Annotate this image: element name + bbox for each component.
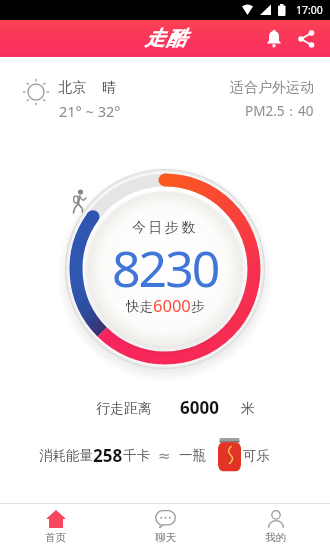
- staticText: 今日步数: [132, 219, 198, 237]
- staticText: 21° ~ 32°: [59, 101, 121, 121]
- staticText: 首页: [45, 531, 66, 544]
- staticText: 米: [241, 400, 255, 418]
- button[interactable]: 首页: [0, 504, 110, 550]
- staticText: 走酷: [144, 26, 187, 51]
- staticText: 聊天: [155, 531, 176, 544]
- staticText: 我的: [265, 531, 286, 544]
- button[interactable]: [262, 27, 286, 51]
- staticText: 行走距离: [96, 400, 152, 418]
- button[interactable]: 我的: [220, 504, 330, 550]
- staticText: 北京: [58, 79, 86, 97]
- staticText: 17:00: [296, 3, 323, 17]
- button[interactable]: [294, 27, 318, 51]
- staticText: 258: [93, 444, 123, 467]
- staticText: 千卡: [123, 447, 150, 464]
- button[interactable]: 聊天: [110, 504, 220, 550]
- staticText: 步: [191, 298, 205, 315]
- staticText: 可乐: [243, 447, 270, 464]
- staticText: 6000: [153, 294, 191, 316]
- staticText: 6000: [180, 396, 219, 419]
- staticText: 消耗能量: [39, 447, 93, 464]
- staticText: 8230: [112, 234, 219, 302]
- staticText: PM2.5：40: [245, 102, 314, 120]
- staticText: 适合户外运动: [230, 79, 314, 97]
- staticText: 晴: [102, 79, 116, 97]
- staticText: 快走: [126, 298, 153, 315]
- staticText: 一瓶: [179, 447, 206, 464]
- staticText: ≈: [158, 447, 171, 464]
